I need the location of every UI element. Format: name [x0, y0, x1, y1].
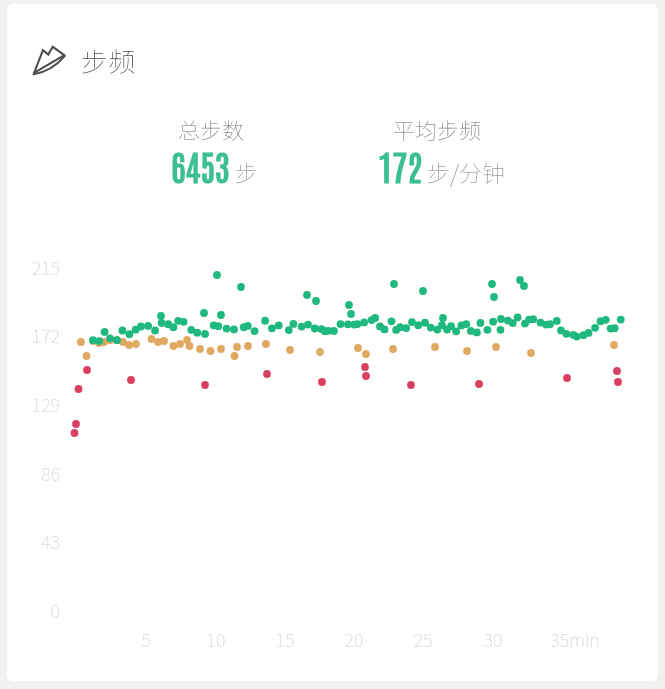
staticText: 6453	[171, 143, 230, 188]
staticText: 10	[156, 626, 276, 652]
staticText: 步	[235, 155, 258, 188]
button[interactable]: 步频	[31, 38, 135, 82]
staticText: 25	[363, 626, 483, 652]
staticText: 86	[7, 460, 60, 486]
staticText: 0	[7, 597, 60, 623]
staticText: 129	[7, 391, 60, 417]
staticText: 步/分钟	[427, 155, 506, 188]
staticText: 215	[7, 254, 60, 280]
staticText: 30	[433, 626, 553, 652]
staticText: 43	[7, 528, 60, 554]
staticText: 步频	[81, 41, 135, 80]
staticText: 15	[225, 626, 345, 652]
staticText: 172	[7, 322, 60, 348]
staticText: 20	[294, 626, 414, 652]
staticText: 172	[378, 143, 422, 188]
staticText: 35min	[515, 626, 635, 652]
staticText: 平均步频	[393, 113, 482, 145]
staticText: 总步数	[178, 113, 245, 145]
